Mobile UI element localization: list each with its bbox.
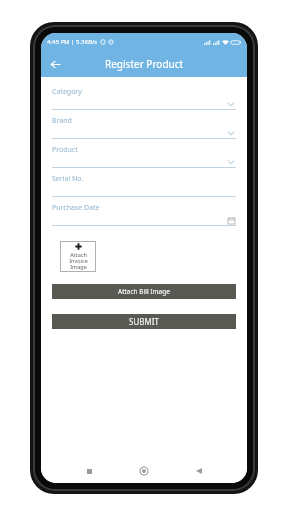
- button[interactable]: Category: [49, 87, 239, 116]
- button[interactable]: Attach Invoice Image: [60, 241, 96, 272]
- staticText: Brand: [52, 116, 72, 126]
- button[interactable]: Home: [136, 463, 152, 479]
- staticText: Purchase Date: [52, 203, 100, 213]
- staticText: Serial No.: [52, 174, 84, 184]
- button[interactable]: Back: [45, 54, 65, 74]
- staticText: Attach Bill Image: [118, 287, 170, 296]
- button[interactable]: Back: [191, 463, 207, 479]
- button[interactable]: SUBMIT: [52, 314, 236, 329]
- button[interactable]: Recents: [81, 463, 97, 479]
- staticText: Product: [52, 145, 78, 155]
- staticText: 4:45 PM | 5.3KB/s: [47, 38, 98, 46]
- staticText: Attach Invoice Image: [69, 251, 88, 271]
- button[interactable]: Attach Bill Image: [52, 284, 236, 299]
- staticText: Category: [52, 87, 82, 97]
- staticText: SUBMIT: [129, 316, 159, 327]
- button[interactable]: Product: [49, 145, 239, 174]
- button[interactable]: Brand: [49, 116, 239, 145]
- button[interactable]: Serial No.: [49, 174, 239, 203]
- staticText: Register Product: [105, 57, 184, 71]
- button[interactable]: Purchase Date: [49, 203, 239, 232]
